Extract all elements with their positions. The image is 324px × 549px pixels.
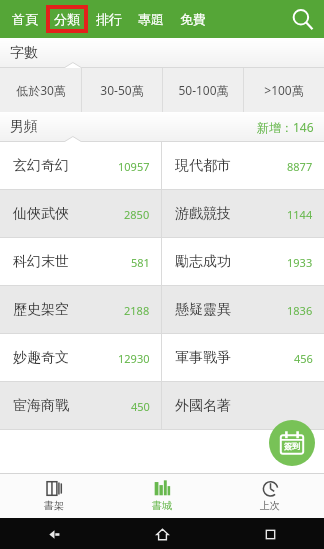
staticText: 2188 [124,303,150,318]
staticText: 游戲競技 [175,205,231,223]
staticText: 1144 [287,207,313,222]
button[interactable]: 首頁 [6,7,44,31]
staticText: 1836 [287,303,313,318]
staticText: 歷史架空 [13,301,69,319]
staticText: 免費 [180,11,206,27]
staticText: 低於30萬 [16,82,66,98]
button[interactable]: 專題 [132,7,170,31]
button[interactable]: 現代都市 [162,142,324,190]
button[interactable]: 仙俠武俠 [0,190,161,238]
button[interactable]: >100萬 [244,68,324,112]
button[interactable]: 游戲競技 [162,190,324,238]
staticText: 8877 [287,159,313,174]
button[interactable]: 書城 [108,473,216,518]
staticText: 專題 [138,11,164,27]
button[interactable]: 分類 [48,7,86,31]
staticText: 妙趣奇文 [13,349,69,367]
button[interactable]: 免費 [174,7,212,31]
button[interactable]: 懸疑靈異 [162,286,324,334]
staticText: 450 [131,399,150,414]
staticText: 宦海商戰 [13,397,69,415]
button[interactable]: 軍事戰爭 [162,334,324,382]
staticText: 1933 [287,255,313,270]
button[interactable]: Home [148,520,176,548]
button[interactable]: 妙趣奇文 [0,334,161,382]
staticText: 外國名著 [175,397,231,415]
staticText: 簽到 [284,441,300,451]
staticText: 50-100萬 [178,82,229,98]
button[interactable]: 排行 [90,7,128,31]
staticText: 字數 [10,44,38,62]
staticText: 首頁 [12,11,38,27]
staticText: 現代都市 [175,157,231,175]
button[interactable]: 玄幻奇幻 [0,142,161,190]
staticText: 2850 [124,207,150,222]
button[interactable]: 簽到 [269,420,315,466]
button[interactable]: 科幻末世 [0,238,161,286]
button[interactable]: 50-100萬 [163,68,243,112]
button[interactable]: 歷史架空 [0,286,161,334]
staticText: 581 [131,255,150,270]
staticText: 上次 [260,499,280,512]
button[interactable]: Back [40,520,68,548]
staticText: 456 [294,351,313,366]
staticText: 新增：146 [257,119,314,135]
button[interactable]: Recent apps [256,520,284,548]
staticText: 書城 [152,499,172,512]
button[interactable]: 宦海商戰 [0,382,161,430]
button[interactable]: 30-50萬 [82,68,162,112]
button[interactable]: 低於30萬 [0,68,81,112]
staticText: >100萬 [264,82,304,98]
button[interactable]: Search [282,0,322,38]
staticText: 科幻末世 [13,253,69,271]
staticText: 12930 [118,351,150,366]
staticText: 書架 [44,499,64,512]
button[interactable]: 勵志成功 [162,238,324,286]
staticText: 仙俠武俠 [13,205,69,223]
staticText: 勵志成功 [175,253,231,271]
staticText: 軍事戰爭 [175,349,231,367]
staticText: 玄幻奇幻 [13,157,69,175]
staticText: 分類 [54,11,80,27]
staticText: 男頻 [10,118,38,136]
staticText: 懸疑靈異 [175,301,231,319]
staticText: 10957 [118,159,150,174]
button[interactable]: 外國名著 [162,382,324,430]
staticText: 排行 [96,11,122,27]
button[interactable]: 書架 [0,473,108,518]
staticText: 30-50萬 [100,82,144,98]
button[interactable]: 上次 [216,473,324,518]
